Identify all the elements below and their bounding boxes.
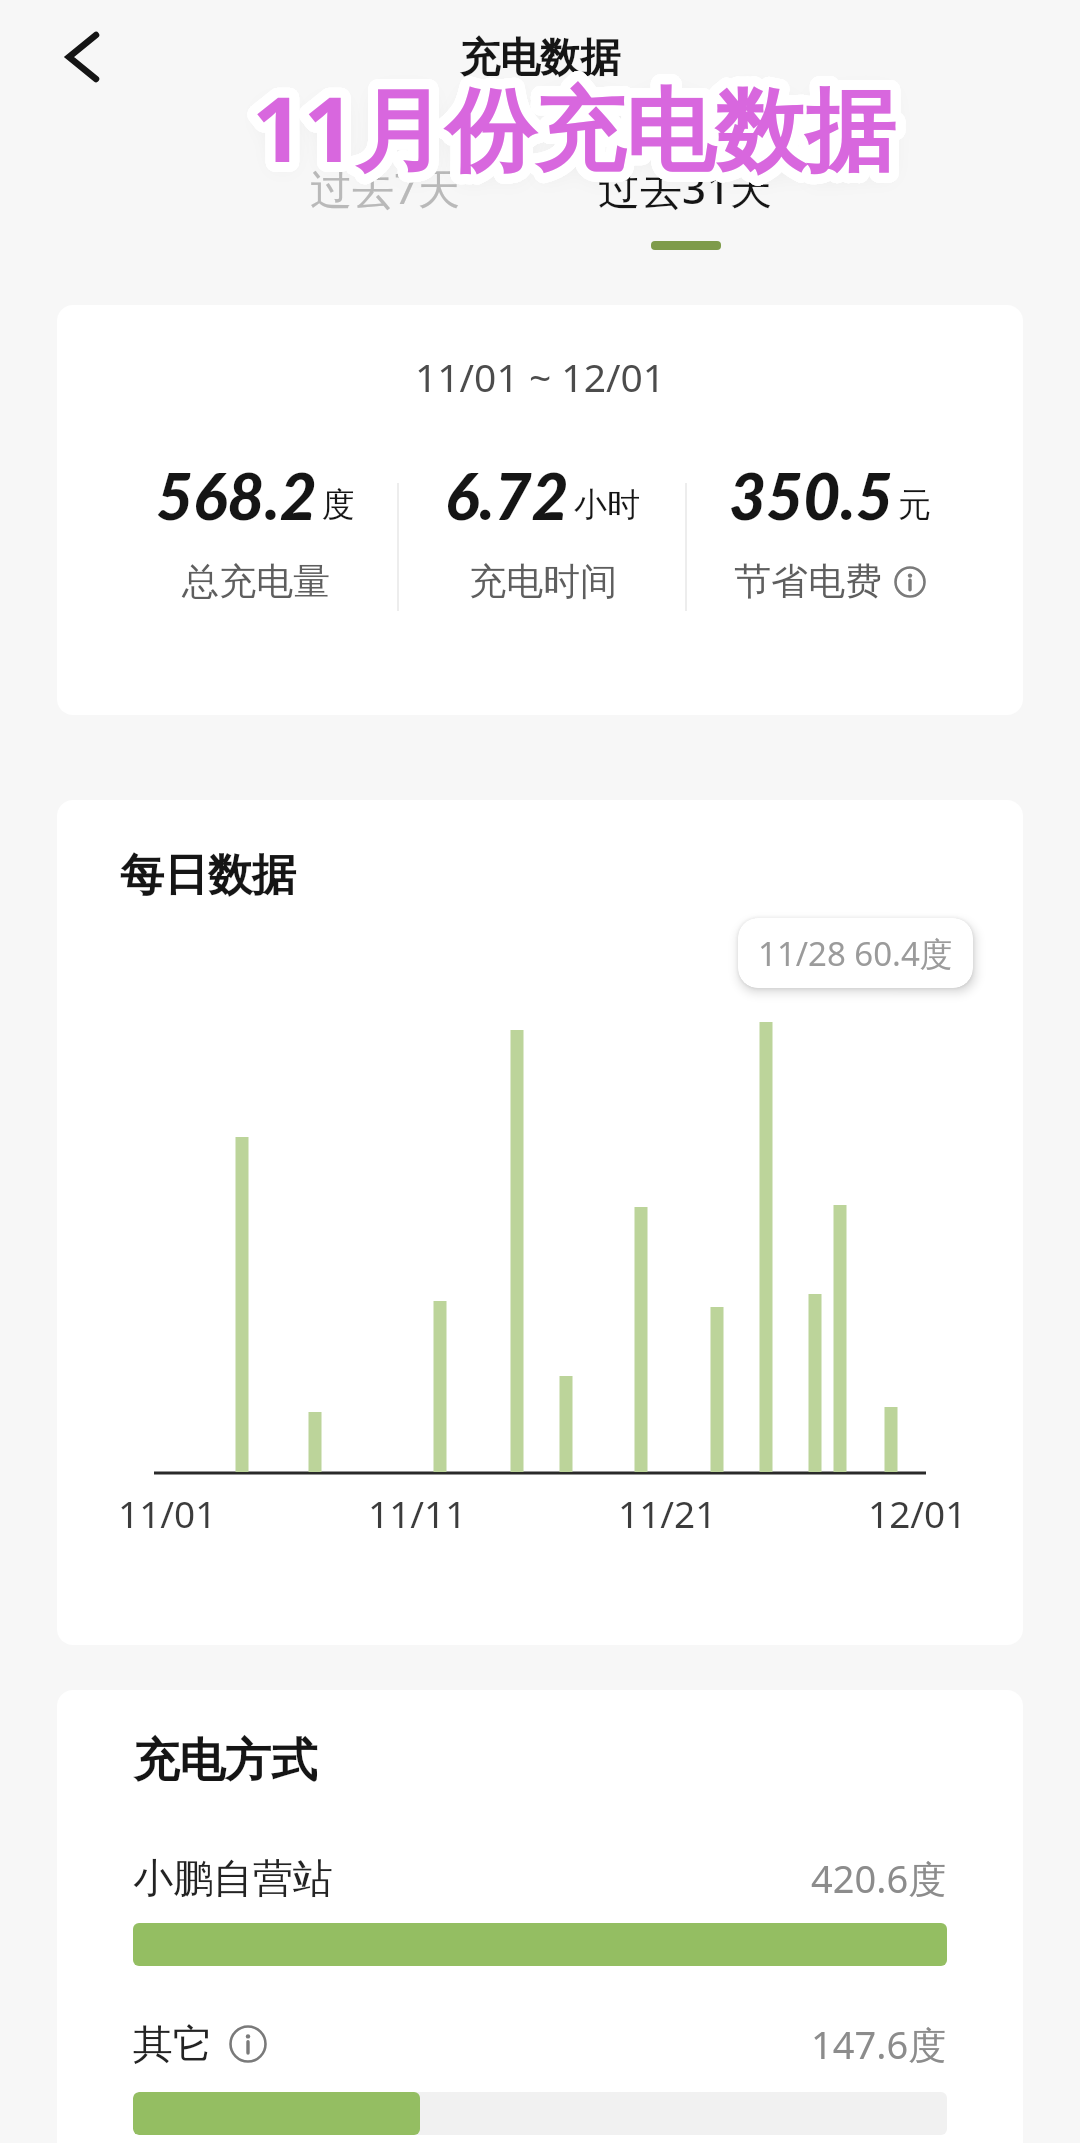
staticText: 11/01: [118, 1488, 217, 1538]
staticText: 11月份充电数据: [252, 66, 895, 189]
staticText: 充电数据: [460, 32, 620, 82]
staticText: 充电时间: [469, 558, 617, 605]
button[interactable]: 过去7天: [235, 159, 535, 216]
staticText: 其它: [133, 2019, 213, 2069]
staticText: 小鹏自营站: [133, 1853, 333, 1903]
staticText: 过去7天: [310, 159, 461, 216]
staticText: 11/21: [618, 1488, 717, 1538]
staticText: 11月份充电数据: [252, 66, 895, 189]
staticText: 总充电量: [182, 558, 330, 605]
button[interactable]: [894, 566, 926, 598]
staticText: 11/11: [368, 1488, 467, 1538]
staticText: 11/01 ~ 12/01: [415, 350, 666, 403]
staticText: 11/28 60.4度: [758, 931, 953, 976]
staticText: 420.6度: [811, 1852, 947, 1904]
staticText: 元: [898, 484, 931, 526]
button[interactable]: 过去31天: [535, 159, 835, 216]
staticText: 11月份充电数据: [252, 66, 895, 189]
button[interactable]: [46, 22, 116, 92]
staticText: 12/01: [868, 1488, 967, 1538]
staticText: 度: [322, 484, 355, 526]
staticText: 小时: [574, 484, 640, 526]
staticText: 6.72: [445, 457, 569, 534]
staticText: 147.6度: [811, 2018, 947, 2070]
button[interactable]: [229, 2025, 267, 2063]
staticText: 每日数据: [120, 848, 296, 903]
staticText: 350.5: [729, 457, 893, 534]
staticText: 充电方式: [133, 1732, 317, 1790]
staticText: 节省电费: [734, 558, 882, 605]
staticText: 568.2: [156, 457, 317, 534]
staticText: 过去31天: [598, 159, 773, 216]
